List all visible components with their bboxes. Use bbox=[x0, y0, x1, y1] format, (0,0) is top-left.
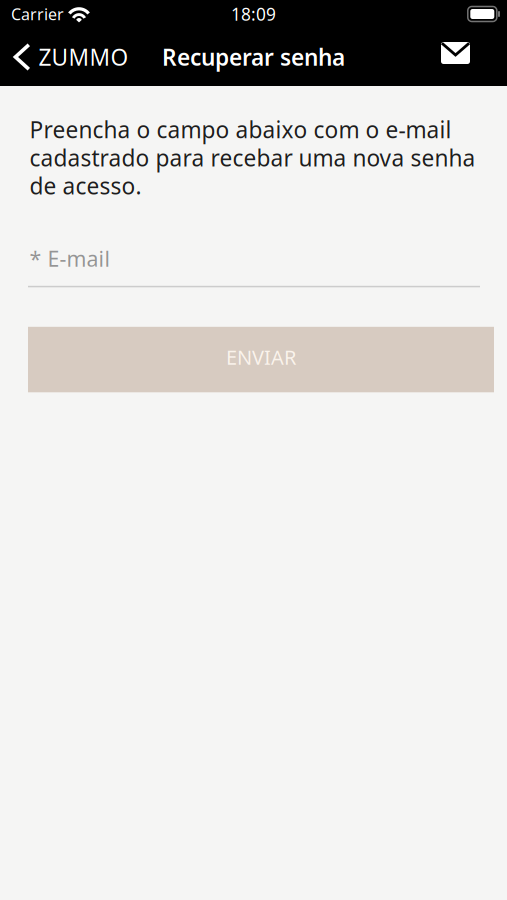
staticText: 18:09 bbox=[231, 2, 276, 25]
staticText: ZUMMO bbox=[38, 42, 128, 72]
button[interactable]: ENVIAR bbox=[28, 327, 494, 392]
button[interactable]: ZUMMO bbox=[0, 28, 135, 86]
staticText: Preencha o campo abaixo com o e-mail cad… bbox=[29, 114, 475, 201]
button[interactable]: Contato bbox=[427, 28, 507, 86]
staticText: Carrier bbox=[11, 3, 64, 25]
button[interactable]: * E-mail bbox=[28, 244, 480, 287]
staticText: Recuperar senha bbox=[162, 42, 345, 72]
staticText: * E-mail bbox=[29, 244, 110, 273]
staticText: ENVIAR bbox=[226, 344, 296, 370]
